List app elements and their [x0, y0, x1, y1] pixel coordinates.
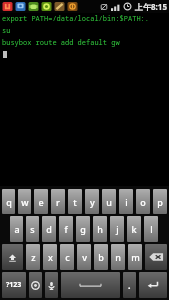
staticText: . [128, 279, 131, 291]
button[interactable]: p [153, 189, 167, 214]
button[interactable]: Voice input [45, 272, 58, 298]
staticText: u [106, 196, 112, 208]
staticText: g [80, 223, 86, 235]
button[interactable]: l [144, 216, 158, 242]
staticText: r [56, 196, 60, 208]
button[interactable]: a [10, 216, 23, 242]
staticText: x [48, 251, 53, 263]
button[interactable]: Period [123, 272, 136, 298]
staticText: i [125, 196, 128, 208]
button[interactable]: g [76, 216, 90, 242]
staticText: m [131, 251, 140, 263]
staticText: o [140, 196, 146, 208]
staticText: p [157, 196, 163, 208]
button[interactable]: Shift [2, 244, 23, 270]
button[interactable]: Delete [145, 244, 167, 270]
button[interactable]: y [85, 189, 99, 214]
button[interactable]: t [68, 189, 82, 214]
staticText: busybox route add default gw 192.168.42.… [2, 38, 169, 48]
button[interactable]: s [26, 216, 39, 242]
staticText: s [30, 223, 35, 235]
staticText: v [82, 251, 87, 263]
staticText: l [150, 223, 153, 235]
button[interactable]: export PATH=/data/local/bin:$PATH:. [0, 13, 169, 186]
button[interactable]: h [93, 216, 107, 242]
button[interactable]: c [60, 244, 74, 270]
staticText: z [31, 251, 36, 263]
staticText: export PATH=/data/local/bin:$PATH:. [2, 14, 149, 24]
button[interactable]: n [111, 244, 125, 270]
button[interactable]: x [43, 244, 57, 270]
staticText: t [73, 196, 77, 208]
staticText: a [14, 223, 20, 235]
button[interactable]: j [110, 216, 124, 242]
staticText: b [98, 251, 104, 263]
button[interactable]: o [136, 189, 150, 214]
button[interactable]: Space [61, 272, 120, 298]
button[interactable]: Enter [139, 272, 167, 298]
button[interactable]: u [102, 189, 116, 214]
staticText: 上午8:15 [135, 1, 167, 12]
button[interactable]: w [18, 189, 31, 214]
button[interactable]: i [119, 189, 133, 214]
button[interactable]: e [34, 189, 48, 214]
button[interactable]: Symbols [2, 272, 26, 298]
staticText: k [131, 223, 137, 235]
button[interactable]: b [94, 244, 108, 270]
staticText: su [2, 26, 11, 36]
staticText: d [46, 223, 52, 235]
staticText: f [64, 223, 68, 235]
staticText: q [6, 196, 12, 208]
staticText: w [21, 196, 29, 208]
staticText: e [38, 196, 44, 208]
button[interactable]: k [127, 216, 141, 242]
staticText: n [115, 251, 121, 263]
button[interactable]: q [2, 189, 15, 214]
button[interactable]: d [42, 216, 56, 242]
staticText: j [116, 223, 119, 235]
button[interactable]: z [26, 244, 40, 270]
staticText: y [90, 196, 95, 208]
button[interactable]: m [128, 244, 142, 270]
staticText: h [97, 223, 103, 235]
staticText: c [65, 251, 70, 263]
staticText: ?123 [6, 280, 22, 290]
button[interactable]: r [51, 189, 65, 214]
button[interactable]: f [59, 216, 73, 242]
button[interactable]: v [77, 244, 91, 270]
button[interactable]: Settings [29, 272, 42, 298]
